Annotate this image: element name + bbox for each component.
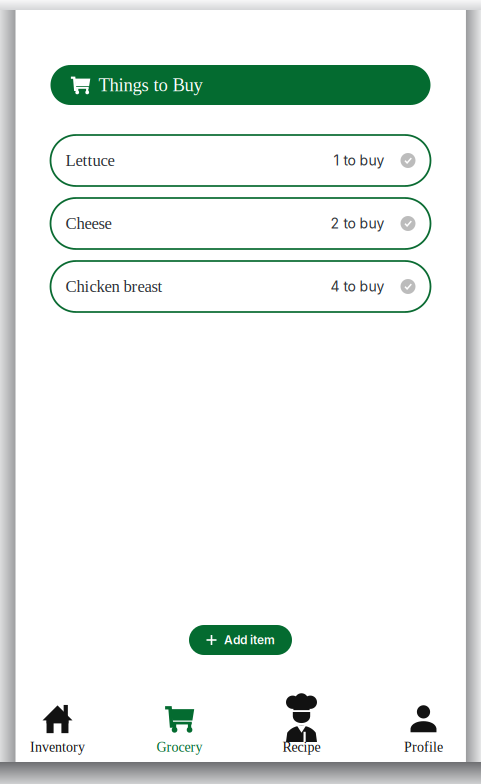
staticText: Lettuce	[65, 151, 114, 170]
staticText: Recipe	[282, 739, 320, 755]
button[interactable]: Grocery	[125, 701, 233, 757]
staticText: Grocery	[156, 739, 202, 755]
button[interactable]: Recipe	[247, 701, 355, 757]
button[interactable]: Chicken breast	[50, 261, 430, 312]
button[interactable]: Things to Buy	[50, 65, 430, 105]
staticText: Cheese	[65, 214, 111, 233]
staticText: 4 to buy	[330, 278, 384, 295]
button[interactable]: Add item	[189, 625, 292, 655]
staticText: Chicken breast	[65, 277, 162, 296]
staticText: Things to Buy	[98, 75, 202, 95]
button[interactable]: Lettuce	[50, 135, 430, 186]
staticText: Add item	[224, 633, 275, 647]
button[interactable]: Profile	[369, 701, 477, 757]
staticText: Inventory	[30, 739, 85, 755]
staticText: Profile	[404, 739, 443, 755]
button[interactable]: Inventory	[3, 701, 111, 757]
staticText: 1 to buy	[333, 152, 384, 169]
button[interactable]: Cheese	[50, 198, 430, 249]
staticText: 2 to buy	[330, 215, 384, 232]
